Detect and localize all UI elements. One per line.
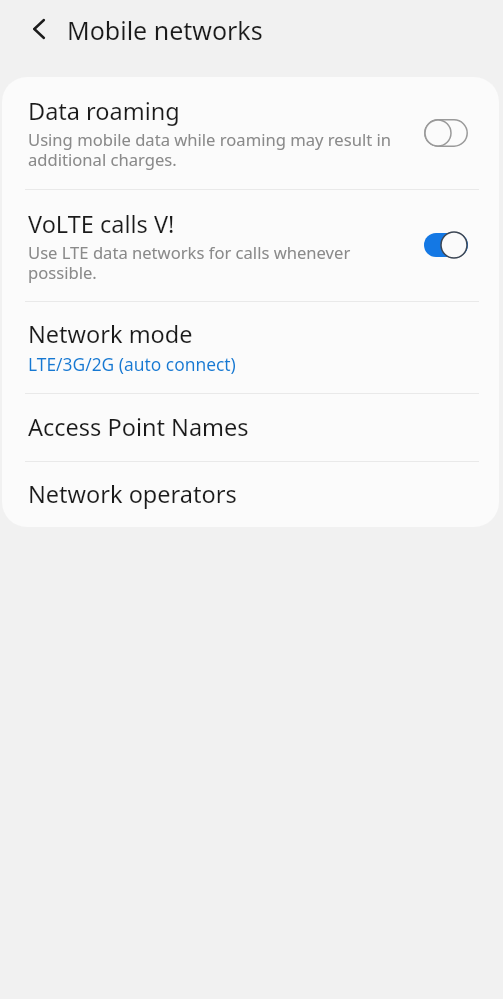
button[interactable]: Network mode [2, 302, 499, 393]
staticText: VoLTE calls V! [28, 208, 175, 240]
staticText: Mobile networks [67, 13, 263, 47]
button[interactable]: Access Point Names [2, 394, 499, 461]
button[interactable]: Data roaming, off [424, 119, 468, 147]
staticText: Using mobile data while roaming may resu… [28, 128, 392, 171]
button[interactable]: VoLTE calls V!, on [424, 231, 468, 259]
staticText: Use LTE data networks for calls whenever… [28, 241, 351, 284]
staticText: Data roaming [28, 95, 180, 127]
staticText: Network operators [28, 478, 237, 510]
staticText: Network mode [28, 318, 193, 350]
button[interactable]: Network operators [2, 462, 499, 527]
staticText: Access Point Names [28, 411, 249, 443]
button[interactable]: Back [16, 6, 61, 51]
button[interactable]: Data roaming [2, 77, 499, 189]
staticText: LTE/3G/2G (auto connect) [28, 352, 236, 376]
button[interactable]: VoLTE calls V! [2, 190, 499, 301]
